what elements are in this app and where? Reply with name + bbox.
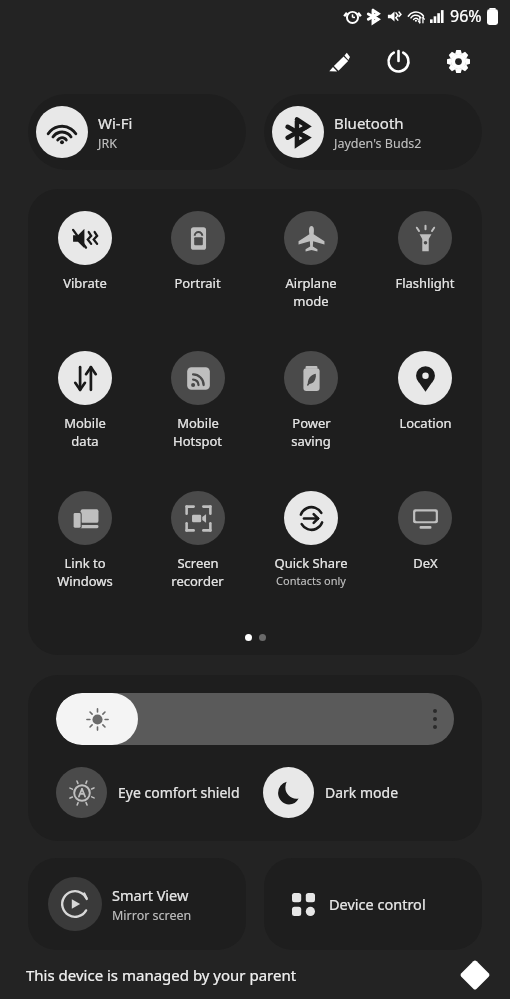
staticText: DeX xyxy=(413,554,438,572)
staticText: Quick Share xyxy=(274,554,348,572)
staticText: JRK xyxy=(98,135,117,152)
staticText: Eye comfort shield xyxy=(118,783,240,802)
staticText: Jayden's Buds2 xyxy=(334,135,422,152)
button[interactable]: Link to xyxy=(28,481,141,621)
staticText: Hotspot xyxy=(173,432,222,450)
button[interactable]: Flashlight xyxy=(368,201,482,341)
staticText: Portrait xyxy=(174,274,221,292)
button[interactable]: Edit xyxy=(314,37,362,85)
staticText: Airplane xyxy=(285,274,337,292)
staticText: Windows xyxy=(57,572,113,590)
button[interactable]: Location xyxy=(368,341,482,481)
button[interactable]: Device control xyxy=(264,858,482,950)
button[interactable]: Dark mode xyxy=(255,767,482,818)
button[interactable]: Quick Share xyxy=(254,481,368,621)
button[interactable]: Vibrate xyxy=(28,201,141,341)
staticText: Flashlight xyxy=(395,274,455,292)
staticText: Link to xyxy=(64,554,106,572)
button[interactable]: Wi-Fi xyxy=(28,94,246,170)
button[interactable]: Brightness xyxy=(56,693,454,745)
staticText: Smart View xyxy=(112,885,189,905)
staticText: Device control xyxy=(329,894,426,914)
staticText: Contacts only xyxy=(276,573,346,588)
staticText: saving xyxy=(291,432,331,450)
staticText: Location xyxy=(399,414,452,432)
staticText: Vibrate xyxy=(63,274,107,292)
button[interactable]: Screen xyxy=(141,481,254,621)
button[interactable]: Portrait xyxy=(141,201,254,341)
button[interactable]: Eye comfort shield xyxy=(28,767,255,818)
staticText: data xyxy=(71,432,99,450)
staticText: This device is managed by your parent xyxy=(26,965,297,985)
button[interactable]: Airplane xyxy=(254,201,368,341)
button[interactable]: Mobile xyxy=(141,341,254,481)
button[interactable]: Settings xyxy=(434,37,482,85)
button[interactable]: DeX xyxy=(368,481,482,621)
staticText: Screen xyxy=(177,554,219,572)
button[interactable]: Bluetooth xyxy=(264,94,482,170)
staticText: Power xyxy=(292,414,331,432)
staticText: Bluetooth xyxy=(334,113,404,133)
staticText: mode xyxy=(293,292,329,310)
staticText: Mobile xyxy=(64,414,106,432)
button[interactable]: Smart View xyxy=(28,858,246,950)
button[interactable]: Power xyxy=(374,37,422,85)
button[interactable]: Power xyxy=(254,341,368,481)
button[interactable]: Mobile xyxy=(28,341,141,481)
staticText: Dark mode xyxy=(325,783,399,802)
staticText: recorder xyxy=(171,572,224,590)
staticText: Wi-Fi xyxy=(98,113,133,133)
staticText: Mirror screen xyxy=(112,907,192,924)
staticText: Mobile xyxy=(177,414,219,432)
staticText: 96% xyxy=(450,5,482,27)
